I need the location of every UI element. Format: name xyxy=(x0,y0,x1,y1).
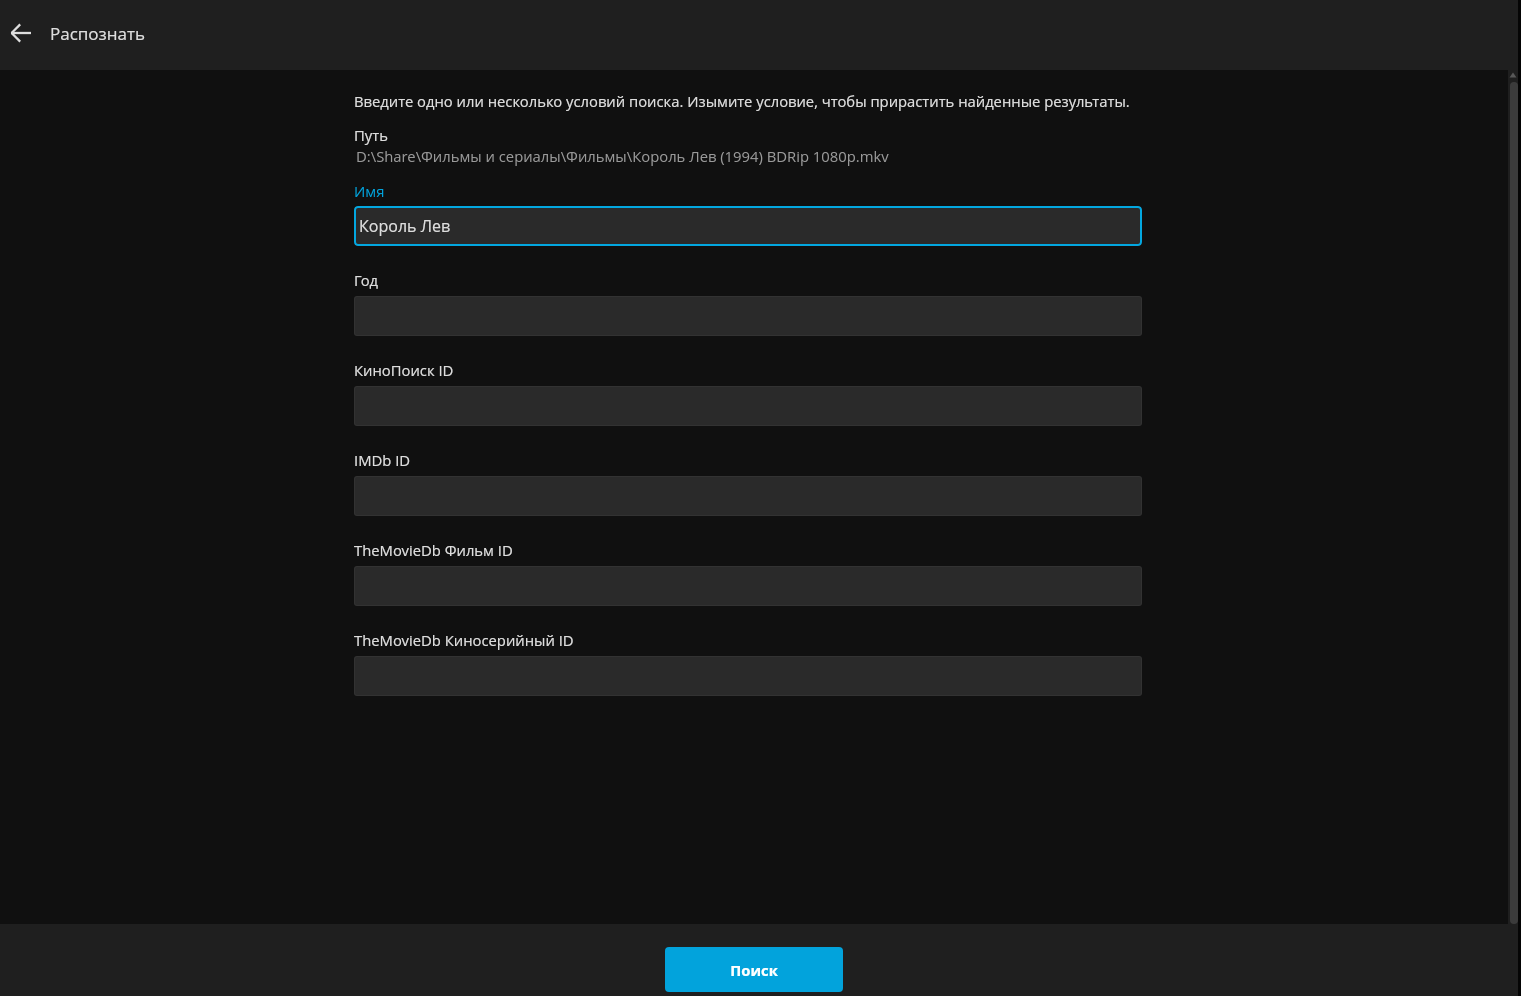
button[interactable]: Поиск xyxy=(665,947,843,992)
button[interactable]: Назад xyxy=(0,12,42,54)
staticText: TheMovieDb Киносерийный ID xyxy=(354,630,574,650)
staticText: IMDb ID xyxy=(354,450,411,470)
staticText: TheMovieDb Фильм ID xyxy=(354,540,513,560)
staticText: Имя xyxy=(354,181,385,201)
staticText: Поиск xyxy=(730,960,778,980)
staticText: Король Лев xyxy=(359,215,451,237)
staticText: D:\Share\Фильмы и сериалы\Фильмы\Король … xyxy=(356,146,889,166)
button[interactable]: Король Лев xyxy=(354,206,1142,246)
staticText: Год xyxy=(354,270,379,290)
staticText: Распознать xyxy=(50,22,146,45)
staticText: КиноПоиск ID xyxy=(354,360,454,380)
staticText: Введите одно или несколько условий поиск… xyxy=(354,91,1130,111)
staticText: Путь xyxy=(354,125,388,145)
